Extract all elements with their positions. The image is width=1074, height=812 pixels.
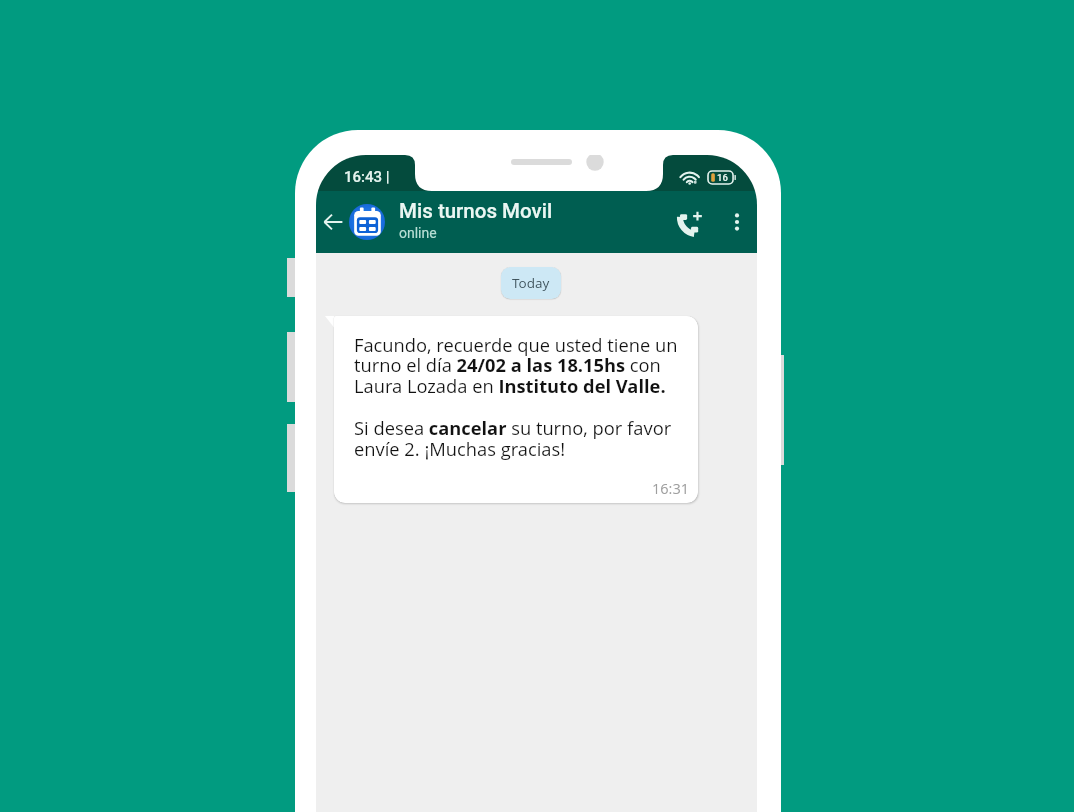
button[interactable]: Today	[501, 267, 561, 299]
staticText: 16:31	[652, 479, 690, 499]
button[interactable]: Call	[673, 204, 709, 240]
button[interactable]: Facundo, recuerde que usted tiene un tur…	[334, 316, 698, 503]
button[interactable]: Back	[317, 206, 349, 238]
button[interactable]: Contact photo	[349, 204, 385, 240]
staticText: Mis turnos Movil	[399, 199, 553, 223]
staticText: Today	[512, 274, 550, 292]
button[interactable]: More options	[722, 207, 752, 237]
staticText: 16:43 |	[344, 168, 390, 186]
staticText: Facundo, recuerde que usted tiene un tur…	[354, 332, 690, 462]
staticText: 16	[717, 172, 728, 183]
staticText: online	[399, 225, 437, 241]
